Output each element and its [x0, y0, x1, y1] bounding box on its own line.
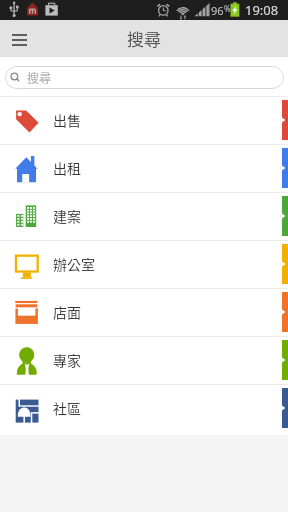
button[interactable]: 辦公室 [0, 240, 288, 288]
button[interactable]: Open navigation menu [0, 21, 38, 58]
staticText: % [224, 3, 231, 14]
button[interactable]: 建案 [0, 192, 288, 240]
staticText: 社區 [53, 398, 81, 418]
staticText: 96 [211, 3, 224, 18]
staticText: 19:08 [245, 1, 279, 19]
staticText: 出租 [53, 158, 81, 178]
staticText: 店面 [53, 302, 81, 322]
staticText: 辦公室 [53, 254, 95, 274]
button[interactable]: 搜尋 [5, 66, 284, 89]
staticText: 搜尋 [127, 26, 161, 51]
staticText: 出售 [53, 110, 81, 130]
button[interactable]: 出售 [0, 96, 288, 144]
staticText: 建案 [53, 206, 81, 226]
button[interactable]: 專家 [0, 336, 288, 384]
staticText: 搜尋 [27, 69, 52, 86]
staticText: 專家 [53, 350, 81, 370]
button[interactable]: 社區 [0, 384, 288, 432]
button[interactable]: 出租 [0, 144, 288, 192]
button[interactable]: 店面 [0, 288, 288, 336]
